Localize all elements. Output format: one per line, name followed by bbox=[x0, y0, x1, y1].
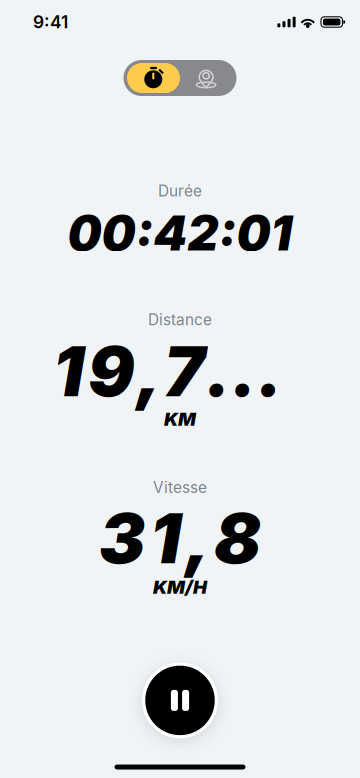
staticText: Vitesse bbox=[153, 478, 207, 497]
staticText: 19,764 bbox=[53, 329, 307, 413]
staticText: Durée bbox=[158, 181, 202, 200]
staticText: Distance bbox=[148, 310, 212, 329]
button[interactable]: Pause bbox=[140, 660, 220, 740]
staticText: 31,8 bbox=[99, 496, 261, 580]
staticText: 9:41 bbox=[33, 11, 68, 32]
staticText: KM bbox=[164, 408, 196, 430]
staticText: KM/H bbox=[153, 576, 207, 598]
staticText: 00:42:01 bbox=[67, 204, 292, 262]
button[interactable]: Chronomètre bbox=[127, 63, 180, 93]
button[interactable]: Carte bbox=[180, 63, 233, 93]
